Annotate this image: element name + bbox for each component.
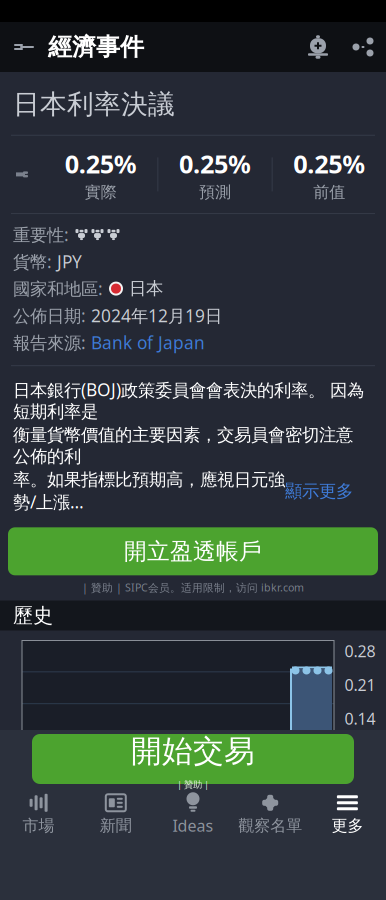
staticText: 0.25% — [293, 147, 365, 180]
staticText: 觀察名單 — [238, 816, 302, 835]
staticText: 衡量貨幣價值的主要因素，交易員會密切注意公佈的利 — [13, 424, 353, 467]
staticText: 貨幣: — [13, 250, 52, 273]
staticText: 日本利率決議 — [13, 88, 175, 121]
staticText: 開立盈透帳戶 — [124, 537, 262, 565]
staticText: 0.25% — [179, 147, 251, 180]
staticText: | 贊助 | — [177, 778, 209, 790]
staticText: 國家和地區: — [13, 277, 103, 300]
staticText: JPY — [57, 250, 82, 273]
staticText: 報告來源: — [13, 331, 86, 354]
button[interactable]: Share — [340, 22, 386, 72]
button[interactable]: Bank of Japan — [91, 331, 205, 354]
button[interactable]: 市場 — [0, 787, 77, 839]
staticText: 日本銀行(BOJ)政策委員會會表決的利率。 因為短期利率是 — [13, 378, 364, 422]
staticText: 前值 — [313, 182, 345, 202]
staticText: 率。如果指標比預期高，應視日元強勢/上漲… — [13, 469, 285, 513]
staticText: 2024年12月19日 — [91, 304, 222, 327]
button[interactable]: 新聞 — [77, 787, 154, 839]
staticText: 重要性: — [13, 223, 69, 246]
staticText: 開始交易 — [131, 732, 255, 770]
staticText: 0.07 — [344, 742, 375, 763]
button[interactable]: 更多 — [309, 787, 386, 839]
staticText: Bank of Japan — [91, 331, 205, 354]
staticText: 0.21 — [344, 674, 375, 695]
staticText: Ideas — [172, 815, 213, 836]
button[interactable]: 開立盈透帳戶 — [8, 527, 378, 575]
button[interactable]: 開始交易 — [0, 734, 386, 784]
button[interactable]: Back — [0, 22, 48, 72]
staticText: 歷史 — [13, 603, 53, 628]
staticText: | 贊助 | SIPC会员。适用限制，访问 ibkr.com — [82, 580, 304, 594]
button[interactable]: Expand chart — [141, 830, 245, 854]
staticText: 顯示更多 — [285, 480, 353, 502]
staticText: -0.07 — [342, 809, 378, 830]
staticText: 公佈日期: — [13, 304, 86, 327]
staticText: 實際 — [85, 182, 117, 202]
staticText: 新聞 — [100, 816, 132, 835]
staticText: 經濟事件 — [48, 32, 144, 62]
button[interactable]: Add alert — [296, 22, 340, 72]
staticText: 0.14 — [344, 708, 375, 729]
staticText: 市場 — [23, 816, 55, 835]
staticText: 0.25% — [65, 147, 137, 180]
staticText: 0.00 — [344, 775, 375, 797]
staticText: 0.28 — [344, 640, 375, 662]
staticText: 日本 — [129, 278, 163, 299]
button[interactable]: 顯示更多 — [285, 480, 353, 502]
button[interactable]: 觀察名單 — [232, 787, 309, 839]
staticText: 預測 — [199, 182, 231, 202]
staticText: 更多 — [331, 816, 363, 835]
button[interactable]: Ideas — [154, 786, 232, 840]
